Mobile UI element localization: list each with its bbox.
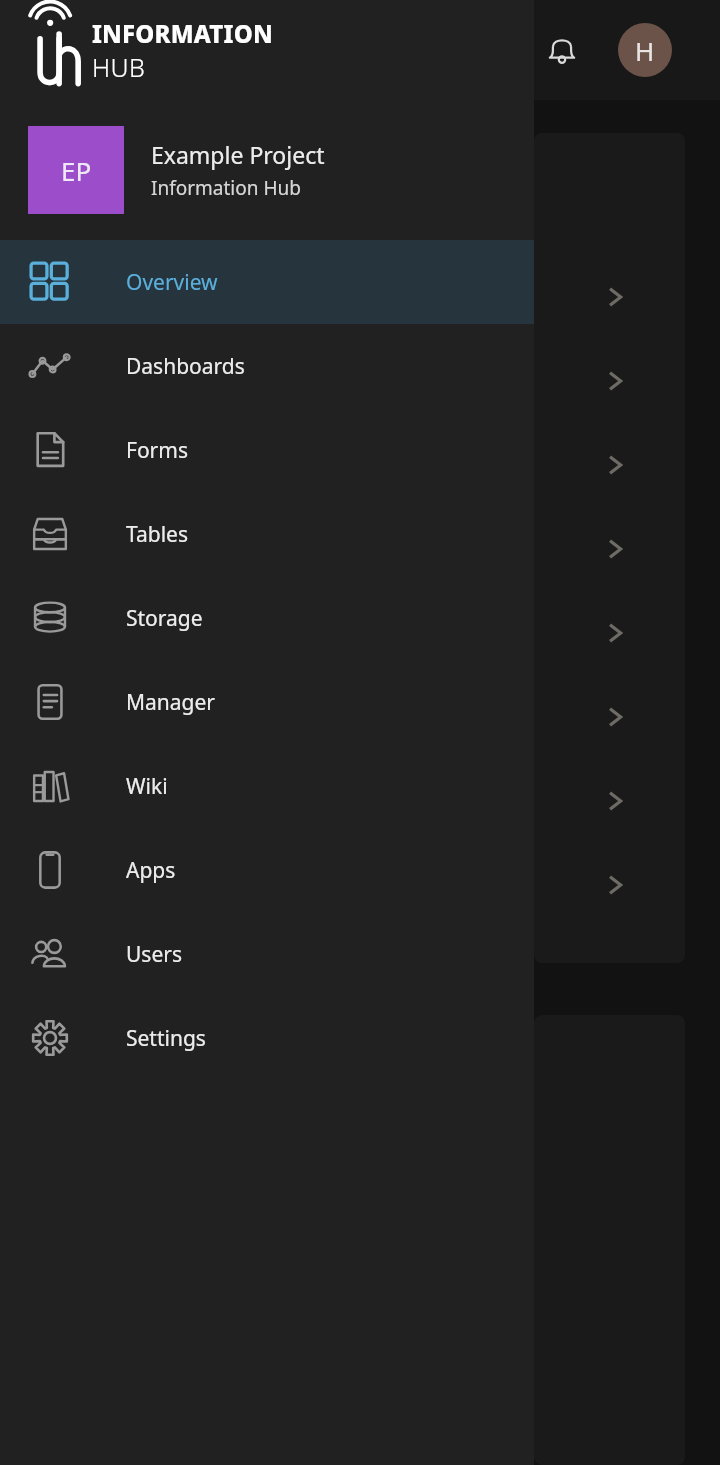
button[interactable]: EP — [0, 100, 534, 240]
staticText: Dashboards — [126, 352, 245, 381]
button[interactable]: Storage — [0, 576, 534, 660]
button[interactable]: Account — [618, 23, 672, 77]
button[interactable]: Users — [0, 912, 534, 996]
staticText: Tables — [126, 520, 189, 549]
button[interactable]: Apps — [0, 828, 534, 912]
staticText: Manager — [126, 688, 216, 717]
staticText: Wiki — [126, 772, 168, 801]
staticText: H — [635, 33, 655, 68]
staticText: Example Project — [151, 139, 325, 170]
button[interactable]: Settings — [0, 996, 534, 1080]
staticText: Apps — [126, 856, 176, 885]
button[interactable]: Wiki — [0, 744, 534, 828]
button[interactable]: Manager — [0, 660, 534, 744]
button[interactable]: Dashboards — [0, 324, 534, 408]
staticText: Information Hub — [151, 175, 301, 201]
staticText: EP — [61, 153, 92, 188]
staticText: Settings — [126, 1024, 206, 1053]
button[interactable]: Forms — [0, 408, 534, 492]
button[interactable]: Tables — [0, 492, 534, 576]
staticText: HUB — [92, 50, 146, 84]
staticText: Overview — [126, 268, 218, 297]
button[interactable]: Notifications — [530, 18, 594, 82]
staticText: Forms — [126, 436, 188, 465]
button[interactable]: Overview — [0, 240, 534, 324]
staticText: Storage — [126, 604, 203, 633]
staticText: INFORMATION — [92, 17, 273, 50]
staticText: Users — [126, 940, 182, 969]
